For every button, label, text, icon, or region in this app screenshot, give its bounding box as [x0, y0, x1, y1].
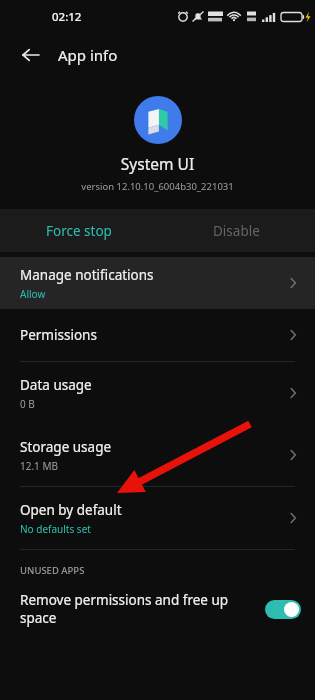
staticText: Permissions	[20, 326, 97, 344]
button[interactable]: Force stop	[0, 209, 157, 252]
button[interactable]: Manage notifications	[0, 257, 315, 309]
staticText: System UI	[0, 153, 315, 174]
staticText: version 12.10.10_6004b30_221031	[0, 180, 315, 193]
button[interactable]: Disable	[157, 209, 315, 252]
staticText: Storage usage	[20, 438, 112, 456]
staticText: Open by default	[20, 501, 122, 519]
button[interactable]: Back	[14, 38, 48, 72]
button[interactable]: Open by default	[0, 487, 315, 549]
staticText: Force stop	[46, 222, 112, 240]
button[interactable]: Storage usage	[0, 424, 315, 486]
staticText: UNUSED APPS	[20, 564, 85, 577]
button[interactable]: Remove permissions toggle	[265, 600, 301, 619]
button[interactable]: Remove permissions and free up space	[0, 591, 315, 627]
staticText: 02:12	[52, 9, 82, 25]
button[interactable]: Permissions	[0, 309, 315, 361]
staticText: 0 B	[20, 397, 35, 411]
staticText: No defaults set	[20, 522, 91, 536]
staticText: App info	[58, 45, 118, 65]
staticText: 12.1 MB	[20, 459, 59, 473]
staticText: Allow	[20, 287, 46, 301]
staticText: Disable	[213, 222, 260, 240]
staticText: Remove permissions and free up space	[20, 591, 255, 627]
button[interactable]: Data usage	[0, 362, 315, 424]
staticText: Manage notifications	[20, 266, 154, 284]
staticText: Data usage	[20, 376, 92, 394]
